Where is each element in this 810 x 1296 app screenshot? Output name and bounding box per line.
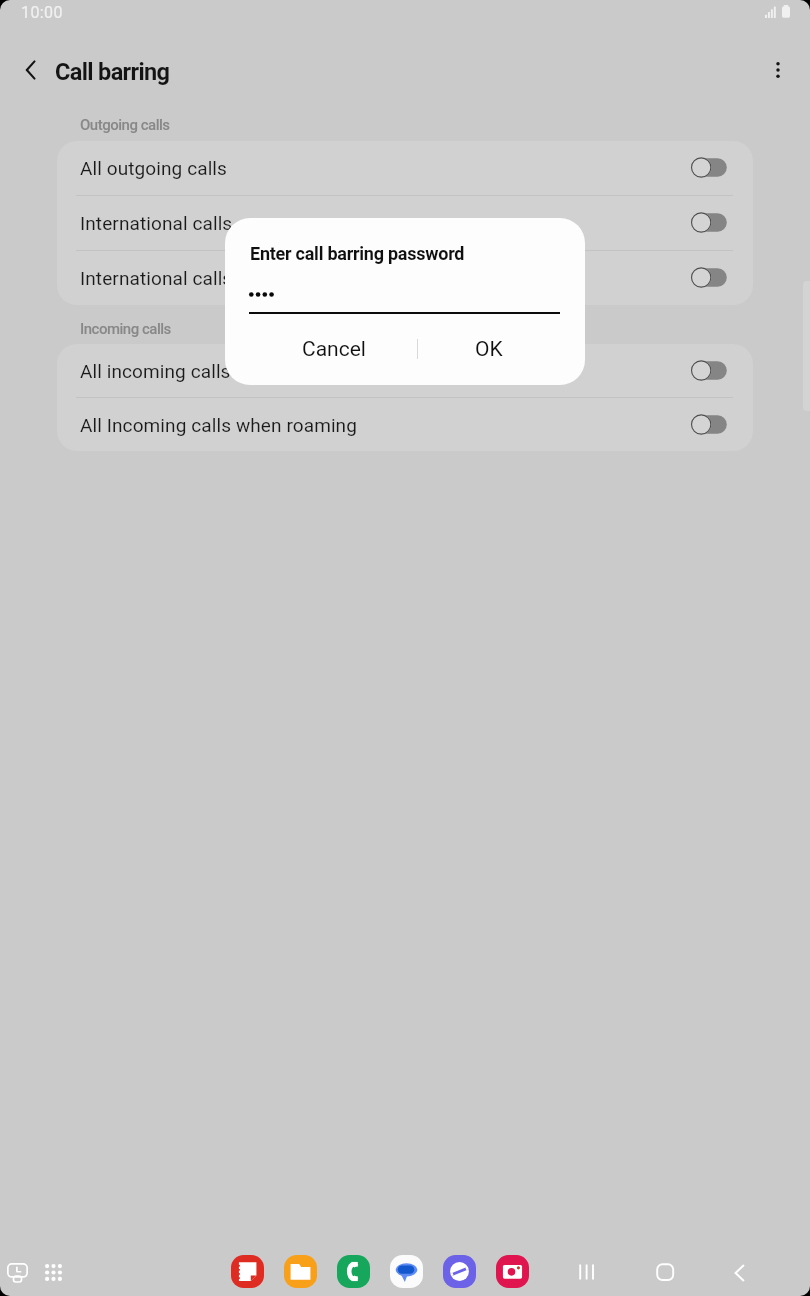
staticText: 10:00 — [21, 3, 63, 22]
button[interactable]: Cancel — [225, 325, 417, 373]
button[interactable]: International calls — [57, 196, 753, 250]
staticText: Outgoing calls — [80, 116, 170, 134]
button[interactable]: International calls except to home — [57, 251, 753, 305]
staticText: Cancel — [302, 337, 366, 362]
button[interactable]: Recent apps — [568, 1252, 608, 1292]
button[interactable]: My Files — [284, 1255, 317, 1288]
staticText: International calls — [80, 212, 683, 234]
button[interactable]: Samsung Notes — [231, 1255, 264, 1288]
button[interactable]: Continue apps on other devices — [0, 1252, 37, 1292]
button[interactable]: Navigate up — [7, 46, 55, 94]
button[interactable]: Camera — [496, 1255, 529, 1288]
staticText: OK — [475, 337, 503, 362]
staticText: All incoming calls — [80, 360, 683, 382]
button[interactable]: All incoming calls — [57, 344, 753, 397]
button[interactable]: Internet — [443, 1255, 476, 1288]
button[interactable]: All apps — [33, 1252, 73, 1292]
button[interactable]: Phone — [337, 1255, 370, 1288]
staticText: International calls except to home — [80, 267, 683, 289]
staticText: Call barring — [55, 58, 170, 86]
staticText: Enter call barring password — [250, 243, 465, 264]
button[interactable]: More options — [753, 46, 801, 94]
button[interactable]: Back — [720, 1252, 760, 1292]
button[interactable]: Messages — [390, 1255, 423, 1288]
button[interactable]: OK — [418, 325, 585, 373]
button[interactable]: All Incoming calls when roaming — [57, 398, 753, 451]
staticText: Incoming calls — [80, 320, 171, 338]
button[interactable]: Home — [645, 1252, 685, 1292]
staticText: All Incoming calls when roaming — [80, 414, 683, 436]
button[interactable]: All outgoing calls — [57, 141, 753, 195]
staticText: All outgoing calls — [80, 157, 683, 179]
